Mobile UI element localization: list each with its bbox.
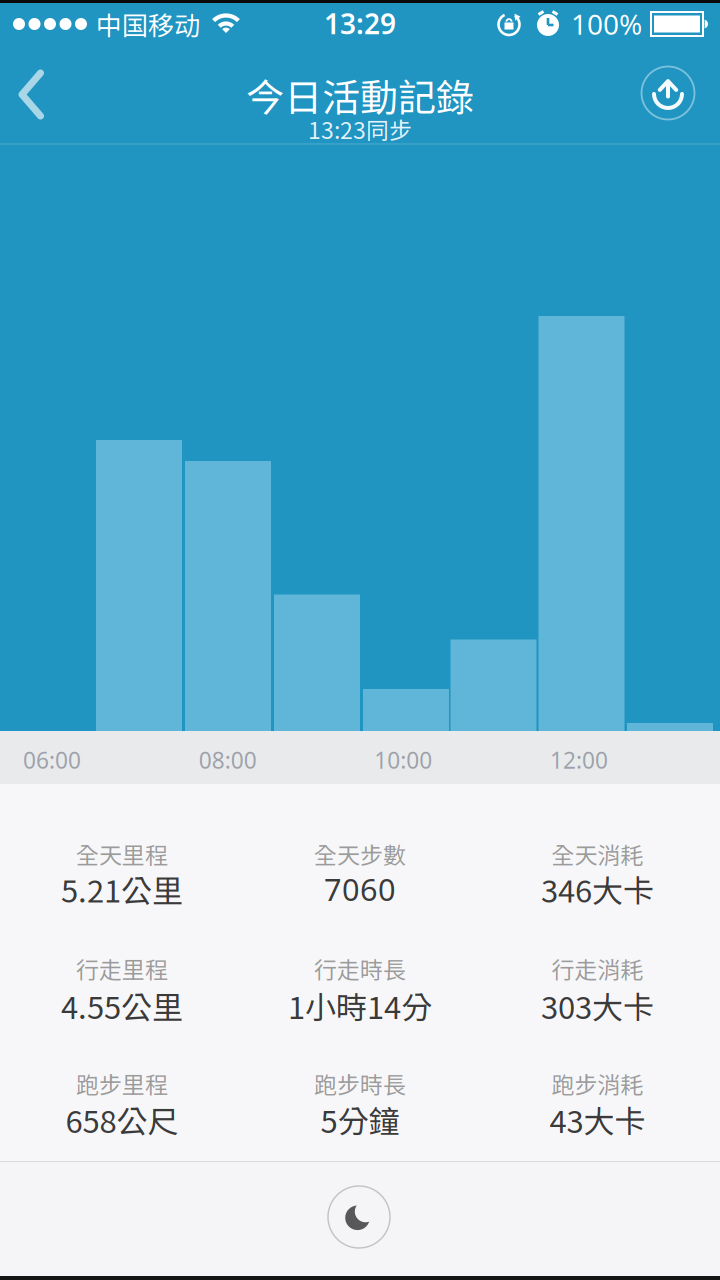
staticText: 行走時長 xyxy=(314,952,406,985)
staticText: 1小時14分 xyxy=(288,983,432,1028)
button[interactable]: Sync xyxy=(640,65,696,121)
staticText: 全天消耗 xyxy=(551,837,643,871)
staticText: 12:00 xyxy=(550,745,608,775)
staticText: 13:29 xyxy=(324,5,396,42)
staticText: 658公尺 xyxy=(65,1097,178,1142)
staticText: 行走消耗 xyxy=(551,952,643,985)
staticText: 43大卡 xyxy=(549,1097,645,1142)
staticText: 10:00 xyxy=(374,745,432,775)
staticText: 全天里程 xyxy=(76,837,168,871)
staticText: 5分鐘 xyxy=(320,1097,399,1142)
staticText: 行走里程 xyxy=(76,952,168,985)
staticText: 4.55公里 xyxy=(61,983,183,1028)
staticText: 全天步數 xyxy=(314,837,406,871)
button[interactable]: Back xyxy=(14,66,50,124)
button[interactable]: Sleep mode xyxy=(328,1186,390,1248)
staticText: 跑步里程 xyxy=(76,1067,168,1100)
staticText: 06:00 xyxy=(23,745,81,775)
staticText: 今日活動記錄 xyxy=(246,67,474,122)
staticText: 13:23同步 xyxy=(308,112,412,146)
staticText: 跑步時長 xyxy=(314,1067,406,1100)
staticText: 5.21公里 xyxy=(61,867,183,911)
staticText: 中国移动 xyxy=(96,5,200,43)
staticText: 303大卡 xyxy=(541,983,654,1028)
staticText: 346大卡 xyxy=(541,867,654,911)
staticText: 100% xyxy=(571,5,642,43)
staticText: 跑步消耗 xyxy=(551,1067,643,1100)
staticText: 08:00 xyxy=(199,745,257,775)
staticText: 7060 xyxy=(324,869,396,909)
